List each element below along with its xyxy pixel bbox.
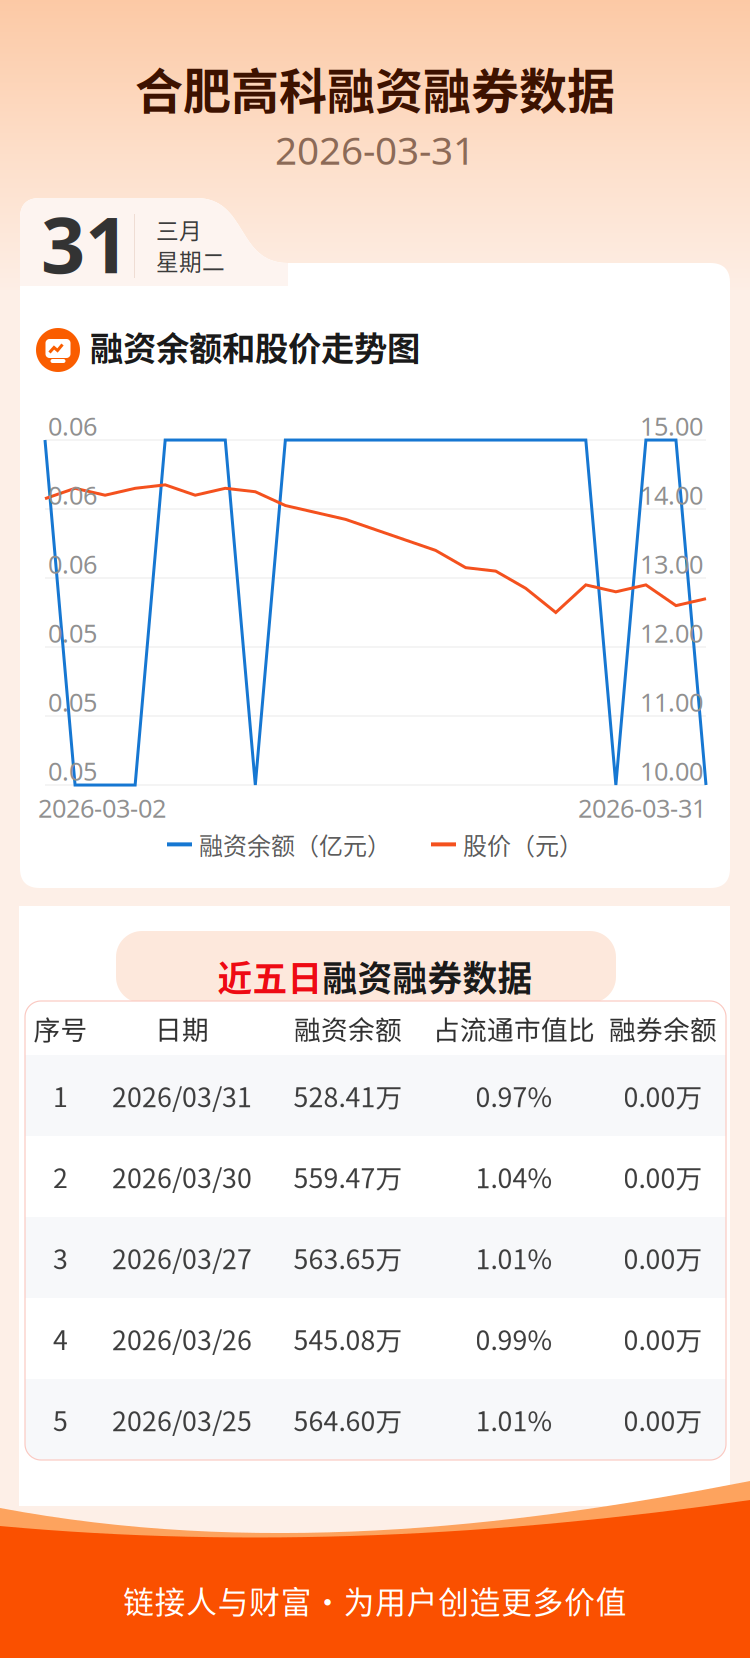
staticText: 0.05 — [48, 616, 97, 650]
staticText: 0.06 — [48, 409, 97, 443]
staticText: 0.00万 — [623, 1157, 702, 1196]
staticText: 0.00万 — [623, 1076, 702, 1115]
staticText: 0.97% — [475, 1076, 552, 1115]
staticText: 融资余额和股价走势图 — [90, 322, 420, 370]
staticText: 1.01% — [475, 1400, 552, 1439]
staticText: 31 — [41, 192, 129, 295]
staticText: 融资余额 — [294, 1009, 402, 1047]
staticText: 559.47万 — [293, 1157, 402, 1196]
staticText: 2026/03/26 — [112, 1319, 252, 1358]
staticText: 0.00万 — [623, 1400, 702, 1439]
staticText: 占流通市值比 — [433, 1009, 595, 1047]
staticText: 2026/03/30 — [112, 1157, 252, 1196]
staticText: 15.00 — [640, 409, 703, 443]
staticText: 528.41万 — [293, 1076, 402, 1115]
staticText: 融资融券数据 — [322, 951, 532, 1001]
staticText: 星期二 — [156, 244, 225, 277]
staticText: 1 — [53, 1076, 68, 1115]
staticText: 链接人与财富·为用户创造更多价值 — [123, 1578, 627, 1622]
staticText: 13.00 — [640, 547, 703, 581]
staticText: 三月 — [156, 213, 202, 246]
staticText: 0.05 — [48, 754, 97, 788]
staticText: 11.00 — [640, 685, 703, 719]
staticText: 0.05 — [48, 685, 97, 719]
staticText: 融券余额 — [609, 1009, 717, 1047]
staticText: 1.04% — [475, 1157, 552, 1196]
staticText: 股价（元） — [463, 827, 583, 862]
staticText: 2026/03/27 — [112, 1238, 252, 1277]
staticText: 日期 — [155, 1009, 209, 1047]
staticText: 0.00万 — [623, 1319, 702, 1358]
staticText: 563.65万 — [293, 1238, 402, 1277]
staticText: 0.00万 — [623, 1238, 702, 1277]
staticText: 1.01% — [475, 1238, 552, 1277]
staticText: 2026-03-31 — [578, 791, 706, 825]
staticText: 合肥高科融资融券数据 — [135, 53, 615, 122]
staticText: 序号 — [33, 1009, 87, 1047]
staticText: 14.00 — [640, 478, 703, 512]
staticText: 0.06 — [48, 478, 97, 512]
staticText: 0.99% — [475, 1319, 552, 1358]
staticText: 3 — [53, 1238, 68, 1277]
staticText: 12.00 — [640, 616, 703, 650]
staticText: 10.00 — [640, 754, 703, 788]
staticText: 5 — [53, 1400, 68, 1439]
staticText: 2026-03-02 — [38, 791, 166, 825]
staticText: 2026/03/31 — [112, 1076, 252, 1115]
staticText: 近五日 — [217, 951, 322, 1001]
staticText: 2026/03/25 — [112, 1400, 252, 1439]
staticText: 564.60万 — [293, 1400, 402, 1439]
staticText: 融资余额（亿元） — [199, 827, 391, 862]
staticText: 545.08万 — [293, 1319, 402, 1358]
staticText: 0.06 — [48, 547, 97, 581]
staticText: 2 — [53, 1157, 68, 1196]
staticText: 4 — [53, 1319, 68, 1358]
staticText: 2026-03-31 — [275, 124, 475, 175]
